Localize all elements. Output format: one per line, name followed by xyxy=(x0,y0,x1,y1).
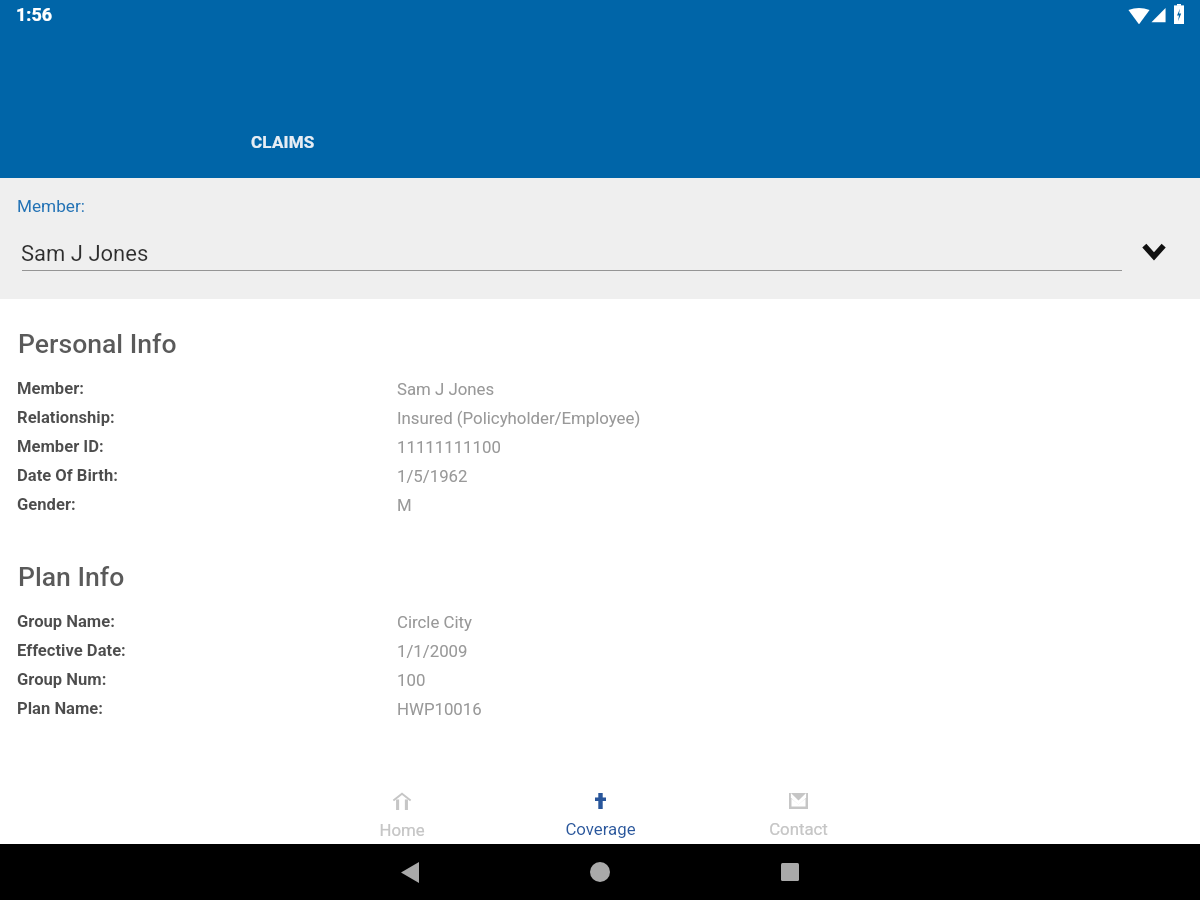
staticText: 1/1/2009 xyxy=(397,641,468,661)
staticText: 1/5/1962 xyxy=(397,466,468,486)
staticText: Circle City xyxy=(397,612,472,632)
staticText: Sam J Jones xyxy=(21,241,149,267)
staticText: Contact xyxy=(769,819,828,839)
staticText: Plan Info xyxy=(18,561,125,592)
staticText: Group Num: xyxy=(17,670,107,689)
staticText: Personal Info xyxy=(18,328,177,359)
staticText: HWP10016 xyxy=(397,699,482,719)
button[interactable]: Member: xyxy=(0,178,1200,299)
staticText: Member: xyxy=(17,196,85,216)
button[interactable]: CLAIMS xyxy=(191,118,375,166)
button[interactable]: Contact xyxy=(710,776,886,844)
staticText: Member ID: xyxy=(17,437,104,456)
staticText: Effective Date: xyxy=(17,641,126,660)
button[interactable]: Back xyxy=(320,844,500,900)
button[interactable]: Home xyxy=(510,844,690,900)
button[interactable]: Recents xyxy=(700,844,880,900)
staticText: Group Name: xyxy=(17,612,115,631)
staticText: Home xyxy=(379,820,425,840)
staticText: 11111111100 xyxy=(397,437,501,457)
staticText: Member: xyxy=(17,379,84,398)
staticText: Relationship: xyxy=(17,408,115,427)
staticText: Date Of Birth: xyxy=(17,466,118,485)
staticText: 100 xyxy=(397,670,426,690)
staticText: Plan Name: xyxy=(17,699,103,718)
staticText: Sam J Jones xyxy=(397,379,495,399)
button[interactable]: Coverage xyxy=(512,776,688,844)
staticText: M xyxy=(397,495,412,515)
staticText: Gender: xyxy=(17,495,76,514)
button[interactable]: Home xyxy=(314,776,490,844)
staticText: Insured (Policyholder/Employee) xyxy=(397,408,641,428)
staticText: CLAIMS xyxy=(251,132,315,152)
staticText: Coverage xyxy=(565,819,636,839)
staticText: 1:56 xyxy=(16,4,53,25)
button[interactable]: Select member xyxy=(1135,232,1173,270)
